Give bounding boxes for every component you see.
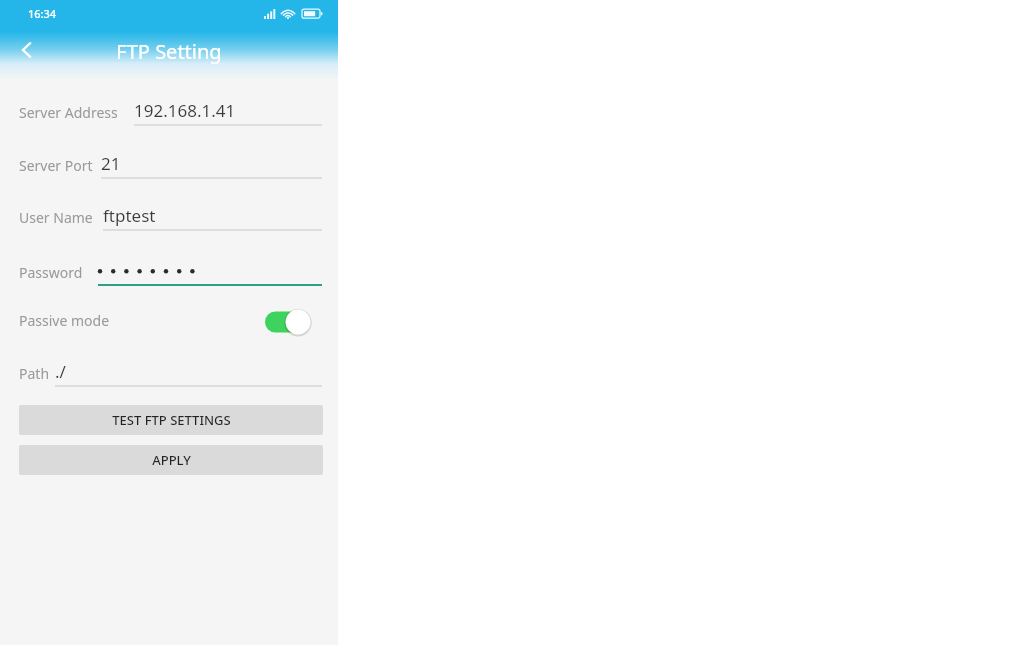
staticText: TEST FTP SETTINGS — [112, 411, 231, 429]
staticText: Password — [19, 263, 83, 282]
staticText: Server Port — [19, 156, 93, 175]
button[interactable]: Path — [0, 357, 338, 403]
staticText: Server Address — [19, 103, 118, 122]
button[interactable]: Passive mode — [0, 303, 338, 345]
staticText: ./ — [55, 360, 66, 383]
button[interactable]: User Name — [0, 201, 338, 247]
button[interactable]: Password — [0, 256, 338, 302]
staticText: 192.168.1.41 — [134, 99, 236, 122]
staticText: 21 — [101, 152, 121, 175]
staticText: ftptest — [103, 204, 156, 227]
button[interactable]: Server Port — [0, 149, 338, 195]
staticText: 16:34 — [28, 6, 57, 21]
staticText: APPLY — [152, 451, 191, 469]
button[interactable]: TEST FTP SETTINGS — [19, 405, 323, 435]
staticText: FTP Setting — [0, 38, 338, 65]
staticText: Path — [19, 364, 50, 383]
button[interactable]: Back — [10, 33, 44, 67]
staticText: Passive mode — [19, 311, 110, 330]
button[interactable]: APPLY — [19, 445, 323, 475]
staticText: User Name — [19, 208, 93, 227]
button[interactable]: Server Address — [0, 96, 338, 142]
